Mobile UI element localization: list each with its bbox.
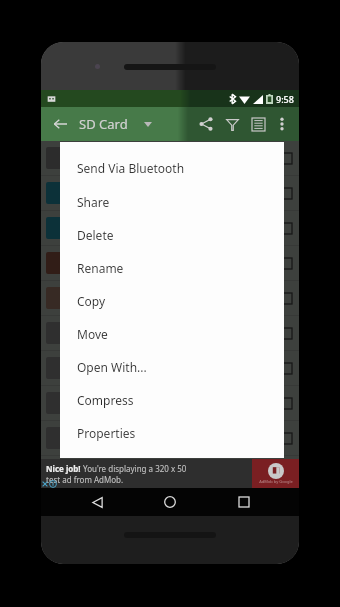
button[interactable]: Move (60, 317, 284, 350)
button[interactable] (41, 176, 299, 210)
staticText: You're displaying a 320 x 50 (83, 463, 187, 474)
button[interactable]: Recent apps (226, 488, 262, 516)
button[interactable] (41, 141, 299, 175)
button[interactable]: Filter (219, 111, 245, 137)
button[interactable]: Send Via Bluetooth (60, 151, 284, 185)
button[interactable]: Copy (60, 284, 284, 317)
button[interactable]: More options (271, 113, 293, 135)
staticText: Move (77, 326, 108, 342)
button[interactable]: Close ad (41, 480, 49, 488)
button[interactable] (41, 351, 299, 385)
button[interactable]: Nice job! (41, 459, 299, 488)
button[interactable]: Back (79, 488, 115, 516)
staticText: Share (77, 194, 110, 210)
staticText: Compress (77, 392, 134, 408)
staticText: Copy (77, 293, 106, 309)
button[interactable]: Home (152, 488, 188, 516)
staticText: AdMob by Google (259, 479, 293, 484)
button[interactable]: Rename (60, 251, 284, 284)
button[interactable]: Back (47, 111, 73, 137)
button[interactable]: Compress (60, 383, 284, 416)
button[interactable] (41, 386, 299, 420)
button[interactable]: SD Card (79, 115, 152, 133)
staticText: Nice job! (46, 463, 83, 474)
button[interactable] (41, 316, 299, 350)
button[interactable]: Share (193, 111, 219, 137)
staticText: 9:58 (276, 93, 294, 105)
staticText: SD Card (79, 115, 128, 133)
staticText: Send Via Bluetooth (77, 160, 185, 176)
button[interactable]: View mode (245, 111, 271, 137)
staticText: Properties (77, 425, 136, 441)
staticText: Delete (77, 227, 114, 243)
button[interactable]: Properties (60, 416, 284, 449)
button[interactable] (41, 281, 299, 315)
button[interactable]: Ad info (49, 480, 57, 488)
button[interactable] (41, 246, 299, 280)
staticText: test ad from AdMob. (46, 474, 124, 485)
button[interactable]: Share (60, 185, 284, 218)
button[interactable]: Open With... (60, 350, 284, 383)
button[interactable] (41, 421, 299, 455)
button[interactable]: Delete (60, 218, 284, 251)
staticText: Open With... (77, 359, 147, 375)
button[interactable] (41, 211, 299, 245)
staticText: Rename (77, 260, 124, 276)
